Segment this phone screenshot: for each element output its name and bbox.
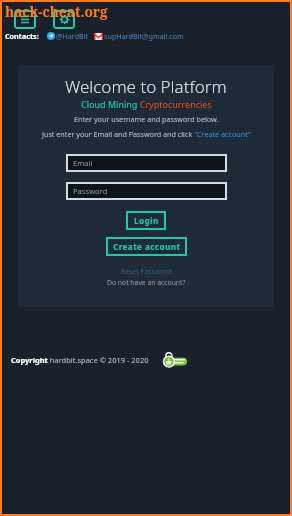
staticText: Do not have an account? [107,278,186,287]
staticText: Password [73,186,108,196]
button[interactable]: Password [68,184,225,198]
button[interactable]: Settings [53,10,75,29]
staticText: Cloud Mining Cryptocurrencies [81,98,212,110]
button[interactable]: supHardBit@gmail.com [94,31,184,41]
staticText: Enter your username and password below. [74,114,219,124]
staticText: Login [134,215,159,226]
staticText: Welcome to Platform [65,75,227,98]
staticText: Just enter your Email and Password and c… [42,129,251,139]
staticText: hack-cheat.org [5,2,108,21]
button[interactable]: Email [68,156,225,170]
button[interactable]: Create account [106,237,187,256]
staticText: @HardBit [56,31,89,41]
staticText: Create account [113,241,181,252]
staticText: Contacts: [5,31,39,41]
button[interactable]: Reset Password [121,267,172,276]
staticText: Email [73,158,93,168]
other: Secured site seal [160,351,187,369]
button[interactable]: Login [126,211,166,230]
staticText: Copyright hardbit.space © 2019 - 2020 [11,355,149,365]
button[interactable]: @HardBit [47,31,89,41]
staticText: supHardBit@gmail.com [104,31,184,41]
button[interactable]: Menu [14,10,36,29]
